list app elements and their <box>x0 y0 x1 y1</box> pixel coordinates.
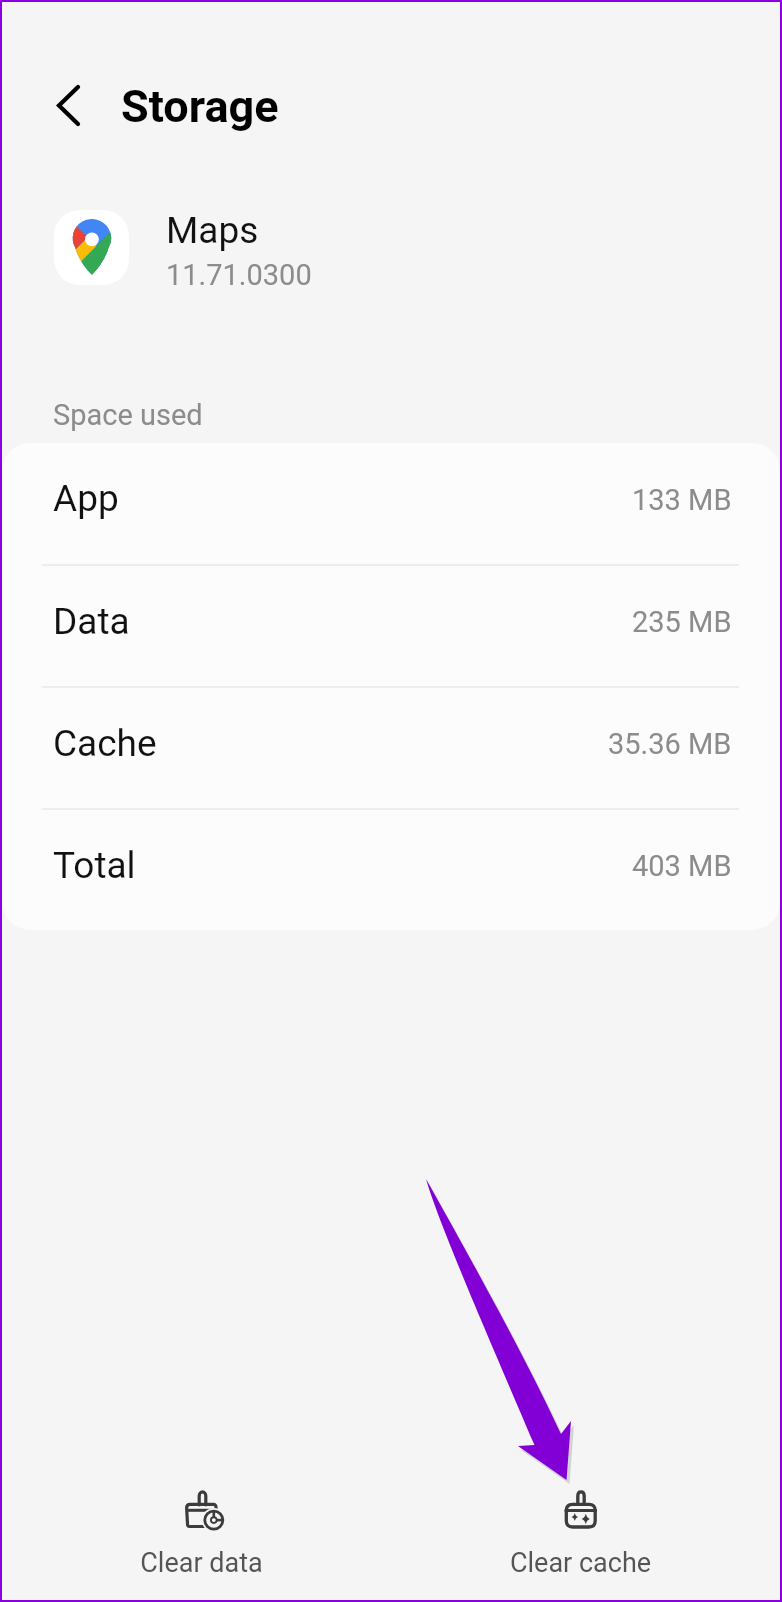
staticText: Maps <box>166 209 259 252</box>
staticText: 11.71.0300 <box>166 258 312 292</box>
staticText: 35.36 MB <box>608 727 732 761</box>
button[interactable]: App <box>2 443 780 564</box>
staticText: Clear data <box>7 1547 396 1579</box>
staticText: Cache <box>53 722 157 765</box>
staticText: 403 MB <box>632 849 732 883</box>
staticText: 133 MB <box>632 483 732 517</box>
staticText: Clear cache <box>386 1547 775 1579</box>
staticText: Data <box>53 600 130 643</box>
staticText: Total <box>53 844 136 887</box>
button[interactable]: Back <box>57 85 80 126</box>
staticText: Space used <box>53 398 203 432</box>
button[interactable]: Total <box>2 810 780 930</box>
other: Clear data <box>183 1489 225 1533</box>
button[interactable]: Clear cache <box>391 1465 780 1600</box>
button[interactable]: Cache <box>2 688 780 808</box>
button[interactable]: Data <box>2 566 780 686</box>
staticText: Storage <box>121 80 279 133</box>
staticText: 235 MB <box>632 605 732 639</box>
button[interactable]: Clear data <box>2 1465 391 1600</box>
staticText: App <box>53 477 119 520</box>
other: Clear cache <box>563 1489 599 1531</box>
